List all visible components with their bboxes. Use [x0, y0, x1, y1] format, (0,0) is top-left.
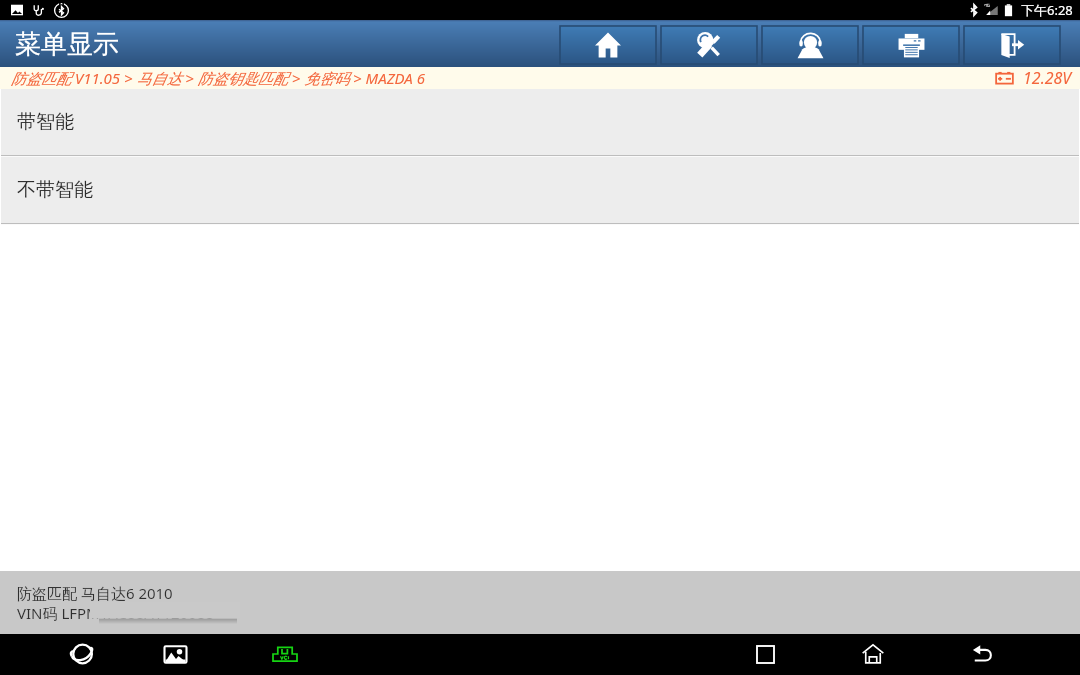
staticText: 防盗匹配 V11.05 > 马自达 > 防盗钥匙匹配 > 免密码 > MAZDA…: [11, 68, 425, 88]
button[interactable]: Support: [762, 26, 858, 64]
button[interactable]: Print: [863, 26, 959, 64]
staticText: 菜单显示: [15, 28, 119, 61]
staticText: 下午6:28: [1021, 1, 1073, 19]
staticText: 12.28V: [1023, 67, 1072, 89]
staticText: VIN码 LFPM1AC88A1120088: [17, 603, 214, 623]
staticText: 不带智能: [17, 178, 93, 202]
button[interactable]: Exit: [964, 26, 1060, 64]
button[interactable]: Gallery: [155, 634, 195, 674]
button[interactable]: Internet: [61, 634, 101, 674]
button[interactable]: Back: [963, 634, 1003, 674]
button[interactable]: Recents: [745, 634, 785, 674]
button[interactable]: Home: [560, 26, 656, 64]
staticText: 防盗匹配 马自达6 2010: [17, 583, 173, 603]
button[interactable]: Tools: [661, 26, 757, 64]
button[interactable]: Home: [853, 634, 893, 674]
button[interactable]: VCI connection: [265, 634, 305, 674]
button[interactable]: 不带智能: [1, 157, 1079, 223]
button[interactable]: 带智能: [1, 89, 1079, 155]
staticText: 带智能: [17, 110, 74, 134]
